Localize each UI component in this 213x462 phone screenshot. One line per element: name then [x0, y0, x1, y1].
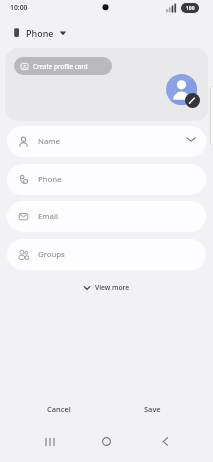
button[interactable]: View more — [0, 280, 213, 295]
button[interactable] — [166, 74, 197, 105]
staticText: Phone — [26, 27, 54, 39]
button[interactable]: Create profile card — [14, 57, 112, 75]
button[interactable]: Email — [7, 201, 206, 232]
button[interactable]: Groups — [7, 239, 206, 270]
staticText: Name — [38, 136, 60, 147]
staticText: Phone — [38, 174, 62, 185]
button[interactable]: Cancel — [19, 400, 99, 417]
staticText: 100 — [186, 5, 195, 12]
staticText: Save — [144, 404, 161, 414]
staticText: Cancel — [47, 404, 71, 414]
button[interactable] — [185, 93, 200, 108]
staticText: View more — [95, 283, 130, 292]
staticText: Groups — [38, 249, 65, 260]
button[interactable] — [96, 434, 117, 449]
staticText: Create profile card — [33, 62, 88, 71]
button[interactable]: Phone — [7, 164, 206, 195]
staticText: Email — [38, 211, 59, 222]
button[interactable]: Name — [7, 126, 206, 157]
button[interactable]: Phone — [12, 24, 76, 41]
button[interactable] — [155, 434, 175, 449]
button[interactable]: Save — [112, 400, 192, 417]
button[interactable] — [39, 434, 60, 449]
staticText: 10:00 — [10, 3, 28, 12]
